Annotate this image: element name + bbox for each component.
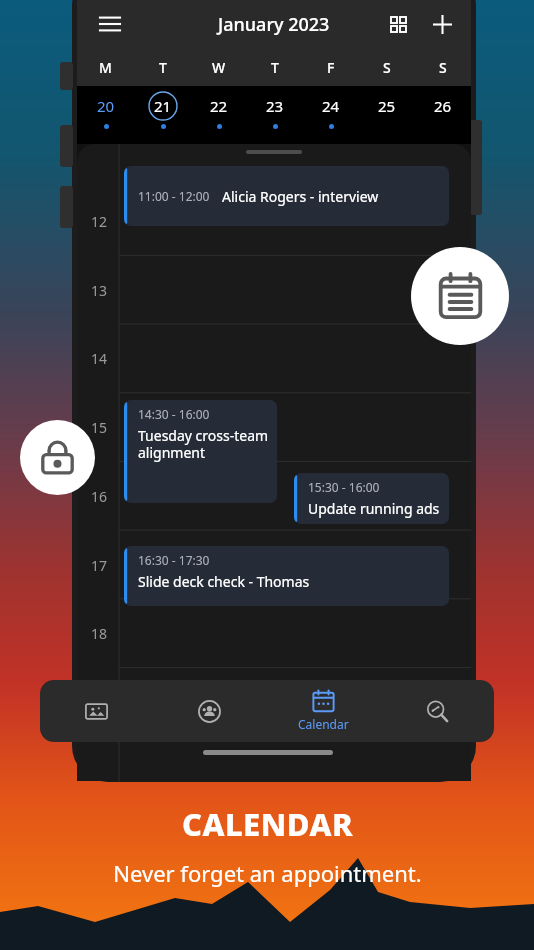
button[interactable]: 15:30 - 16:00 [294,473,449,524]
staticText: S [439,58,447,77]
staticText: F [327,58,335,77]
staticText: T [159,58,167,77]
button[interactable]: 11:00 - 12:00 [124,166,449,226]
staticText: 21 [154,96,172,116]
staticText: Slide deck check - Thomas [138,572,310,591]
button[interactable]: 20 [77,86,134,144]
button[interactable]: 14:30 - 16:00 [124,400,277,503]
staticText: January 2023 [218,12,330,37]
staticText: Tuesday cross-team alignment [138,426,271,462]
button[interactable]: Notes [411,247,509,345]
button[interactable]: 23 [247,86,303,144]
button[interactable]: 22 [191,86,247,144]
staticText: 16:30 - 17:30 [138,552,210,568]
staticText: 15 [91,418,108,437]
staticText: W [212,58,226,77]
staticText: 23 [266,96,284,116]
staticText: Alicia Rogers - interview [222,187,379,206]
staticText: S [383,58,391,77]
staticText: 18 [91,624,108,643]
staticText: 24 [322,96,340,116]
staticText: 25 [378,96,396,116]
staticText: 12 [91,212,108,231]
staticText: Calendar [298,716,349,732]
staticText: CALENDAR [182,803,353,845]
button[interactable]: Search [380,680,494,742]
button[interactable]: Contacts [153,680,266,742]
button[interactable]: 24 [303,86,359,144]
button[interactable]: 26 [415,86,471,144]
staticText: 26 [434,96,452,116]
button[interactable]: 25 [359,86,415,144]
staticText: M [99,58,112,77]
staticText: 16 [91,487,108,506]
staticText: T [271,58,279,77]
staticText: Update running ads [308,499,440,518]
staticText: 11:00 - 12:00 [138,188,210,204]
staticText: 20 [97,96,115,116]
staticText: 22 [210,96,228,116]
button[interactable]: 16:30 - 17:30 [124,546,449,606]
staticText: 13 [91,281,108,300]
button[interactable]: 21 [134,86,191,144]
button[interactable]: Add event [425,7,459,41]
staticText: 17 [91,556,108,575]
staticText: 14:30 - 16:00 [138,406,210,422]
staticText: 15:30 - 16:00 [308,479,380,495]
staticText: 14 [91,349,108,368]
button[interactable]: Privacy lock [20,420,95,495]
button[interactable]: Photos [40,680,153,742]
button[interactable]: Menu [93,7,127,41]
button[interactable]: Calendar [266,680,380,742]
staticText: Never forget an appointment. [113,858,422,888]
button[interactable]: Grid view [381,7,415,41]
